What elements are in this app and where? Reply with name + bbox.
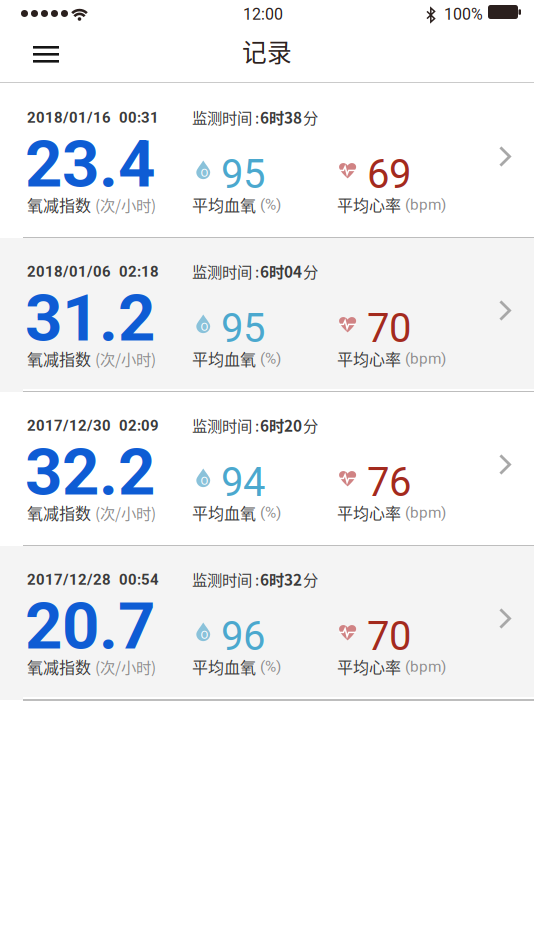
button[interactable]: 2017/12/30 02:09 xyxy=(0,392,534,546)
staticText: 平均血氧 xyxy=(192,655,256,678)
staticText: (次/小时) xyxy=(95,501,156,524)
staticText: 平均心率 xyxy=(337,193,401,216)
staticText: 平均血氧 xyxy=(192,501,256,524)
staticText: 2018/01/06 02:18 xyxy=(27,263,159,280)
staticText: 平均血氧 xyxy=(192,347,256,370)
staticText: 20.7 xyxy=(25,588,155,665)
button[interactable]: 2017/12/28 00:54 xyxy=(0,546,534,700)
staticText: 监测时间 : xyxy=(192,568,259,590)
staticText: 6时20 xyxy=(260,414,302,436)
staticText: (次/小时) xyxy=(95,347,156,370)
staticText: (bpm) xyxy=(405,350,446,368)
staticText: 氧减指数 xyxy=(27,501,91,524)
staticText: 氧减指数 xyxy=(27,347,91,370)
staticText: 32.2 xyxy=(25,434,155,511)
staticText: 76 xyxy=(367,459,411,506)
staticText: (bpm) xyxy=(405,196,446,214)
staticText: 氧减指数 xyxy=(27,193,91,216)
staticText: (bpm) xyxy=(405,658,446,676)
staticText: 分 xyxy=(303,260,318,282)
staticText: 95 xyxy=(221,151,265,198)
staticText: 监测时间 : xyxy=(192,106,259,128)
staticText: 70 xyxy=(367,305,411,352)
button[interactable]: 2018/01/06 02:18 xyxy=(0,238,534,392)
staticText: 69 xyxy=(367,151,411,198)
staticText: 94 xyxy=(221,459,265,506)
staticText: 监测时间 : xyxy=(192,414,259,436)
staticText: 分 xyxy=(303,414,318,436)
button[interactable]: 2018/01/16 00:31 xyxy=(0,84,534,238)
staticText: 2018/01/16 00:31 xyxy=(27,109,159,126)
staticText: (%) xyxy=(260,196,281,214)
staticText: (次/小时) xyxy=(95,655,156,678)
staticText: 23.4 xyxy=(25,126,155,203)
staticText: 平均心率 xyxy=(337,501,401,524)
staticText: 分 xyxy=(303,568,318,590)
staticText: (%) xyxy=(260,350,281,368)
staticText: (%) xyxy=(260,504,281,522)
button[interactable]: Menu xyxy=(0,32,62,82)
staticText: 31.2 xyxy=(25,280,155,357)
staticText: 监测时间 : xyxy=(192,260,259,282)
staticText: (%) xyxy=(260,658,281,676)
staticText: 96 xyxy=(221,613,265,660)
staticText: 平均心率 xyxy=(337,655,401,678)
staticText: 70 xyxy=(367,613,411,660)
staticText: 2017/12/30 02:09 xyxy=(27,417,159,434)
staticText: 6时32 xyxy=(260,568,302,590)
staticText: 平均心率 xyxy=(337,347,401,370)
staticText: 95 xyxy=(221,305,265,352)
staticText: 100% xyxy=(444,5,483,24)
staticText: (次/小时) xyxy=(95,193,156,216)
staticText: 6时04 xyxy=(260,260,302,282)
staticText: 平均血氧 xyxy=(192,193,256,216)
staticText: 氧减指数 xyxy=(27,655,91,678)
staticText: 6时38 xyxy=(260,106,302,128)
staticText: 分 xyxy=(303,106,318,128)
staticText: 2017/12/28 00:54 xyxy=(27,571,159,588)
staticText: (bpm) xyxy=(405,504,446,522)
staticText: 记录 xyxy=(242,33,292,69)
staticText: 12:00 xyxy=(243,5,283,24)
